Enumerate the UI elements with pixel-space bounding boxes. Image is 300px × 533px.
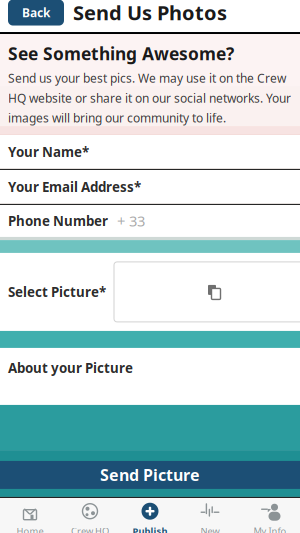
staticText: My Info xyxy=(253,525,286,533)
button[interactable]: Your Email Address* xyxy=(0,170,300,204)
button[interactable]: Home xyxy=(0,498,60,533)
button[interactable]: Your Name* xyxy=(0,135,300,169)
staticText: Your Name* xyxy=(8,143,89,161)
staticText: + 33 xyxy=(117,211,145,231)
button[interactable]: Publish xyxy=(120,498,180,533)
button[interactable]: Crew HQ xyxy=(60,498,120,533)
staticText: Send us your best pics. We may use it on… xyxy=(8,70,291,126)
staticText: About your Picture xyxy=(8,359,133,377)
button[interactable]: Select Picture xyxy=(0,253,300,331)
staticText: Crew HQ xyxy=(71,525,109,533)
staticText: Phone Number xyxy=(8,212,108,230)
button[interactable]: My Info xyxy=(240,498,300,533)
staticText: Send Picture xyxy=(100,464,200,485)
staticText: Publish xyxy=(132,525,167,533)
staticText: Home xyxy=(16,525,43,533)
staticText: Send Us Photos xyxy=(73,0,227,26)
button[interactable]: About your Picture xyxy=(0,348,300,405)
button[interactable]: Back xyxy=(8,0,64,25)
staticText: Your Email Address* xyxy=(8,178,141,196)
staticText: See Something Awesome? xyxy=(8,42,234,65)
staticText: New xyxy=(200,525,219,533)
staticText: Select Picture* xyxy=(8,283,106,301)
button[interactable]: Phone Number xyxy=(0,205,300,237)
button[interactable]: New xyxy=(180,498,240,533)
staticText: Back xyxy=(22,5,50,20)
button[interactable]: Send Picture xyxy=(0,461,300,489)
